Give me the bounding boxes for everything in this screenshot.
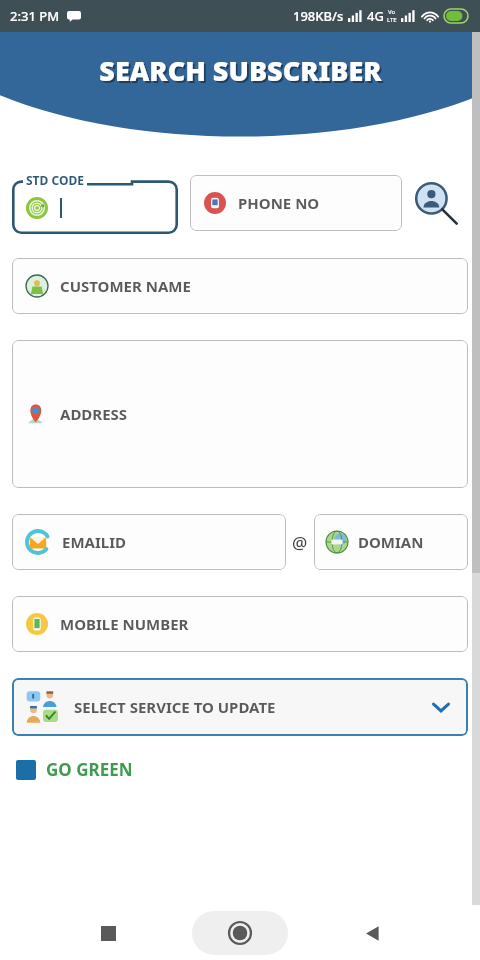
staticText: DOMIAN [358,532,424,552]
button[interactable]: SELECT SERVICE TO UPDATE [12,678,468,736]
staticText: SEARCH SUBSCRIBER [101,54,384,91]
button[interactable]: STD CODE [12,172,178,234]
staticText: LTE [387,16,397,24]
button[interactable]: Search subscriber [410,177,462,229]
button[interactable]: Back [348,909,396,957]
button[interactable]: PHONE NO [190,175,402,231]
staticText: ADDRESS [60,404,128,424]
staticText: Vo [388,8,396,16]
staticText: 2:31 PM [10,7,60,25]
staticText: CUSTOMER NAME [60,276,191,296]
staticText: PHONE NO [238,193,320,213]
staticText: @ [292,531,308,554]
button[interactable]: DOMIAN [314,514,468,570]
staticText: 4G [367,7,384,25]
button[interactable]: GO GREEN [16,758,480,781]
button[interactable]: Home [216,909,264,957]
staticText: STD CODE [26,172,84,188]
button[interactable]: ADDRESS [12,340,468,488]
staticText: 198KB/s [293,7,344,25]
button[interactable]: EMAILID [12,514,286,570]
button[interactable]: Recent apps [84,909,132,957]
staticText: GO GREEN [46,758,133,781]
button[interactable]: CUSTOMER NAME [12,258,468,314]
staticText: MOBILE NUMBER [60,614,189,634]
staticText: SEARCH SUBSCRIBER [99,52,382,89]
button[interactable]: MOBILE NUMBER [12,596,468,652]
staticText: SELECT SERVICE TO UPDATE [74,697,276,717]
staticText: EMAILID [62,532,126,552]
